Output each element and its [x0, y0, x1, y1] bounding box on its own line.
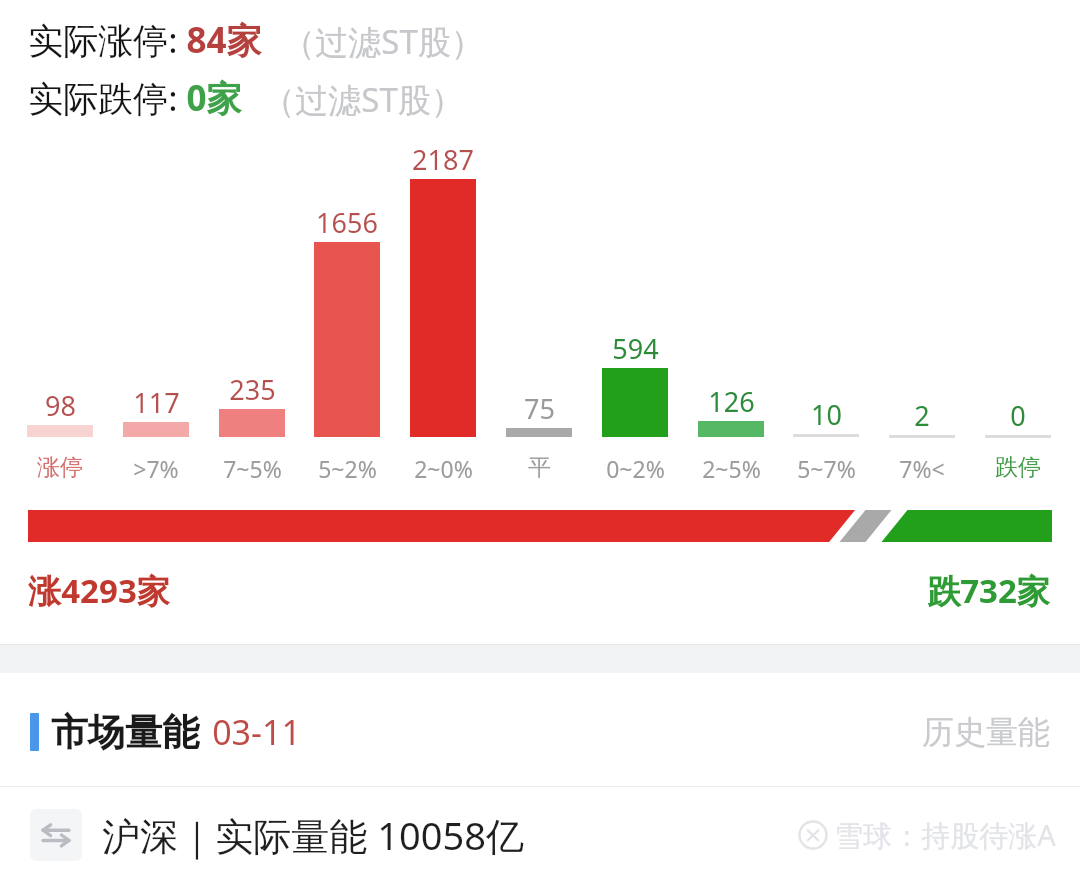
- staticText: 7~5%: [223, 453, 282, 484]
- staticText: 历史量能: [922, 712, 1050, 752]
- staticText: 126: [708, 383, 755, 420]
- staticText: 75: [524, 390, 555, 427]
- staticText: 涨停: [37, 453, 83, 482]
- staticText: 跌停: [995, 453, 1041, 482]
- staticText: 98: [45, 387, 76, 424]
- staticText: 117: [133, 384, 180, 421]
- staticText: 03-11: [212, 709, 301, 755]
- staticText: 7%<: [899, 453, 945, 484]
- staticText: （过滤ST股）: [262, 77, 464, 122]
- staticText: 0: [1010, 397, 1026, 434]
- staticText: 跌732家: [927, 568, 1050, 613]
- staticText: 0~2%: [606, 453, 665, 484]
- button[interactable]: 切换市场: [0, 800, 1080, 869]
- staticText: 涨4293家: [28, 568, 170, 613]
- staticText: 2~0%: [414, 453, 473, 484]
- staticText: （过滤ST股）: [282, 19, 484, 64]
- staticText: 实际涨停:: [28, 16, 178, 64]
- button[interactable]: 跌732家: [927, 568, 1050, 613]
- staticText: 实际跌停:: [28, 74, 178, 122]
- staticText: 沪深｜实际量能 10058亿: [102, 809, 524, 861]
- staticText: 1656: [316, 204, 378, 241]
- staticText: 2187: [412, 141, 474, 178]
- staticText: 平: [528, 453, 551, 482]
- staticText: 0家: [186, 74, 242, 122]
- staticText: 雪球：持股待涨A: [834, 815, 1056, 855]
- staticText: 2~5%: [702, 453, 761, 484]
- staticText: 5~7%: [797, 453, 856, 484]
- button[interactable]: 历史量能: [922, 712, 1050, 752]
- button[interactable]: [28, 510, 1052, 542]
- staticText: 5~2%: [318, 453, 377, 484]
- staticText: 84家: [186, 16, 262, 64]
- staticText: >7%: [133, 453, 179, 484]
- button[interactable]: 切换市场: [30, 809, 82, 861]
- staticText: 10: [811, 396, 842, 433]
- button[interactable]: 市场量能: [0, 700, 1080, 764]
- staticText: 235: [229, 371, 276, 408]
- staticText: 2: [914, 397, 930, 434]
- staticText: 594: [612, 330, 659, 367]
- button[interactable]: 涨4293家: [28, 568, 170, 613]
- staticText: 市场量能: [51, 709, 199, 756]
